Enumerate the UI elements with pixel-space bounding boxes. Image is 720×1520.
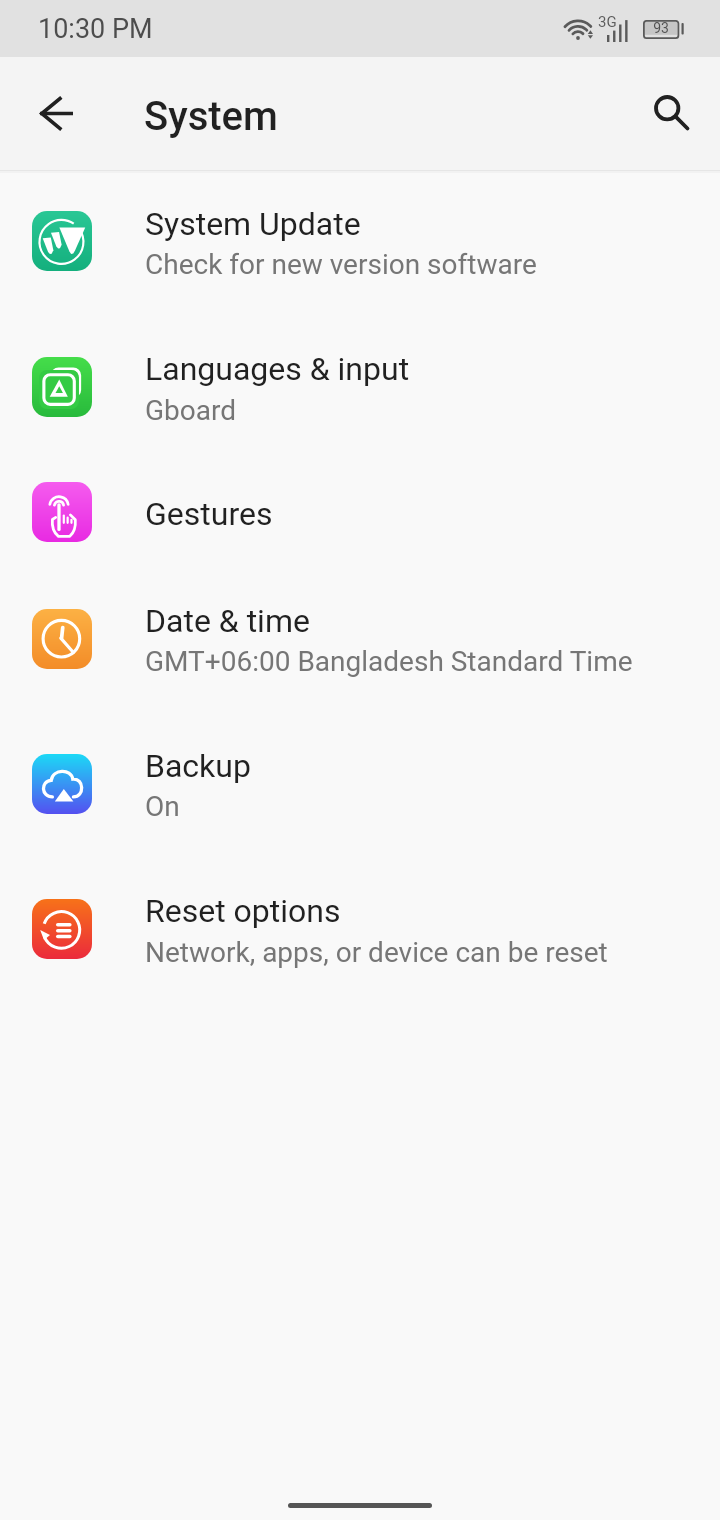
staticText: 3G [598, 13, 617, 31]
button[interactable]: Back [20, 77, 92, 149]
button[interactable] [0, 475, 720, 592]
staticText: Network, apps, or device can be reset [145, 936, 608, 969]
staticText: Date & time [145, 602, 310, 640]
staticText: Check for new version software [145, 248, 537, 281]
staticText: Gboard [145, 394, 237, 427]
staticText: Gestures [145, 495, 273, 533]
button[interactable] [0, 350, 720, 490]
staticText: 10:30 PM [38, 13, 153, 45]
button[interactable]: Search [635, 77, 707, 149]
staticText: Reset options [145, 892, 341, 930]
button[interactable] [0, 747, 720, 887]
button[interactable] [0, 204, 720, 344]
staticText: On [145, 790, 180, 823]
staticText: System [144, 93, 278, 140]
staticText: Languages & input [145, 350, 410, 388]
staticText: Backup [145, 747, 251, 785]
staticText: GMT+06:00 Bangladesh Standard Time [145, 645, 633, 678]
staticText: System Update [145, 205, 361, 243]
button[interactable] [0, 602, 720, 742]
button[interactable] [0, 892, 720, 1032]
staticText: 93 [643, 20, 679, 36]
